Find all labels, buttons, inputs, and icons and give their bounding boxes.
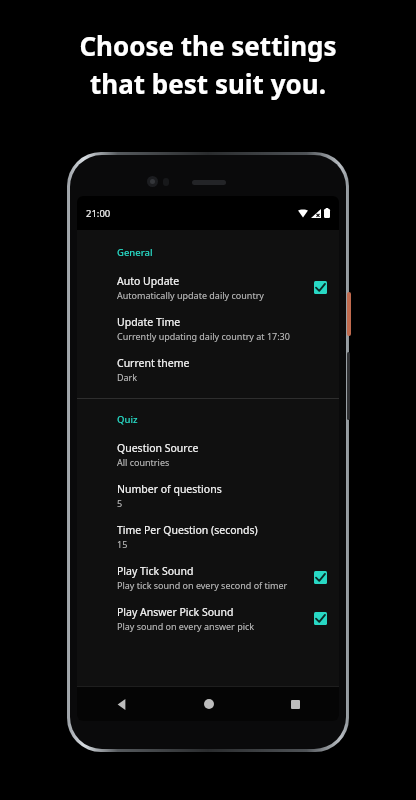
staticText: General: [117, 246, 153, 259]
staticText: 15: [117, 538, 128, 550]
staticText: 21:00: [86, 207, 111, 220]
staticText: Dark: [117, 371, 138, 383]
button[interactable]: Auto Update: [77, 267, 339, 308]
button[interactable]: Toggle Auto Update: [314, 281, 327, 294]
button[interactable]: Play Answer Pick Sound: [77, 598, 339, 639]
button[interactable]: Play Tick Sound: [77, 557, 339, 598]
button[interactable]: Home: [165, 687, 252, 721]
staticText: Current theme: [117, 356, 190, 370]
button[interactable]: Update Time: [77, 308, 339, 349]
button[interactable]: Question Source: [77, 434, 339, 475]
button[interactable]: Recents: [252, 687, 339, 721]
staticText: Question Source: [117, 441, 199, 455]
button[interactable]: Number of questions: [77, 475, 339, 516]
staticText: Play tick sound on every second of timer: [117, 579, 288, 591]
staticText: 5: [117, 497, 123, 509]
staticText: Time Per Question (seconds): [117, 523, 258, 537]
button[interactable]: Back: [77, 687, 165, 721]
staticText: Auto Update: [117, 274, 180, 288]
staticText: that best suit you.: [90, 66, 326, 101]
button[interactable]: Current theme: [77, 349, 339, 390]
staticText: Choose the settings: [79, 28, 337, 63]
staticText: Update Time: [117, 315, 181, 329]
button[interactable]: Toggle Play Tick Sound: [314, 571, 327, 584]
staticText: Currently updating daily country at 17:3…: [117, 330, 290, 342]
staticText: Number of questions: [117, 482, 222, 496]
button[interactable]: Time Per Question (seconds): [77, 516, 339, 557]
button[interactable]: Toggle Play Answer Pick Sound: [314, 612, 327, 625]
staticText: Play Tick Sound: [117, 564, 194, 578]
staticText: Play sound on every answer pick: [117, 620, 255, 632]
staticText: All countries: [117, 456, 170, 468]
staticText: Play Answer Pick Sound: [117, 605, 234, 619]
staticText: Automatically update daily country: [117, 289, 264, 301]
staticText: Quiz: [117, 413, 138, 426]
